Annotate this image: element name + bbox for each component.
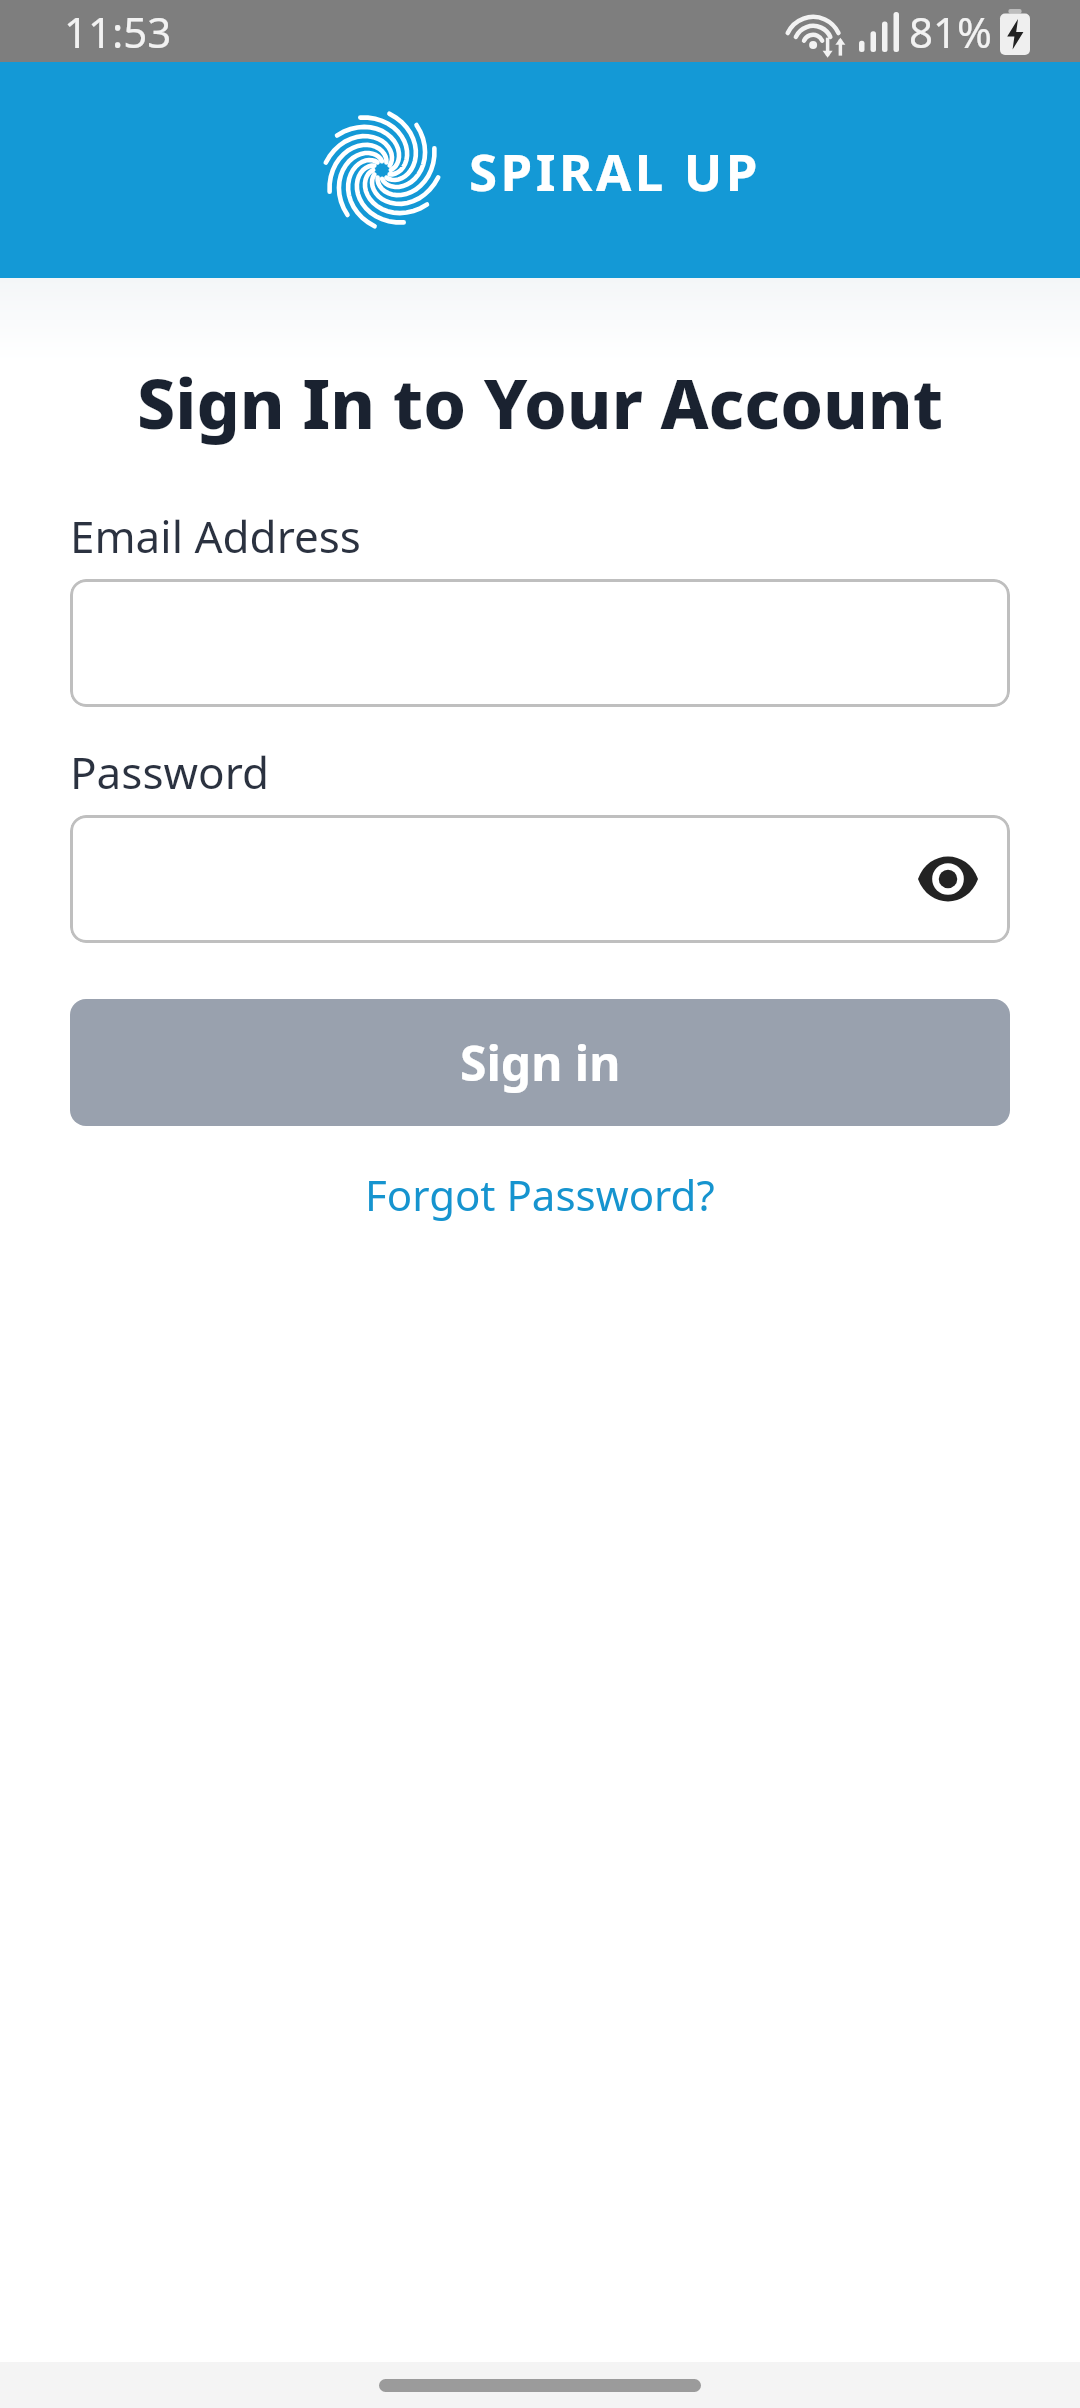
button[interactable]: Sign in <box>70 999 1010 1126</box>
staticText: SPIRAL UP <box>469 136 761 205</box>
staticText: 81% <box>909 3 992 60</box>
button[interactable] <box>918 857 978 901</box>
button[interactable] <box>70 815 1010 943</box>
button[interactable]: Forgot Password? <box>365 1166 715 1223</box>
button[interactable] <box>70 579 1010 707</box>
staticText: 11:53 <box>64 3 172 60</box>
staticText: Password <box>70 742 270 802</box>
staticText: Email Address <box>70 506 361 566</box>
staticText: Sign in <box>460 1030 621 1095</box>
staticText: Sign In to Your Account <box>0 356 1080 449</box>
